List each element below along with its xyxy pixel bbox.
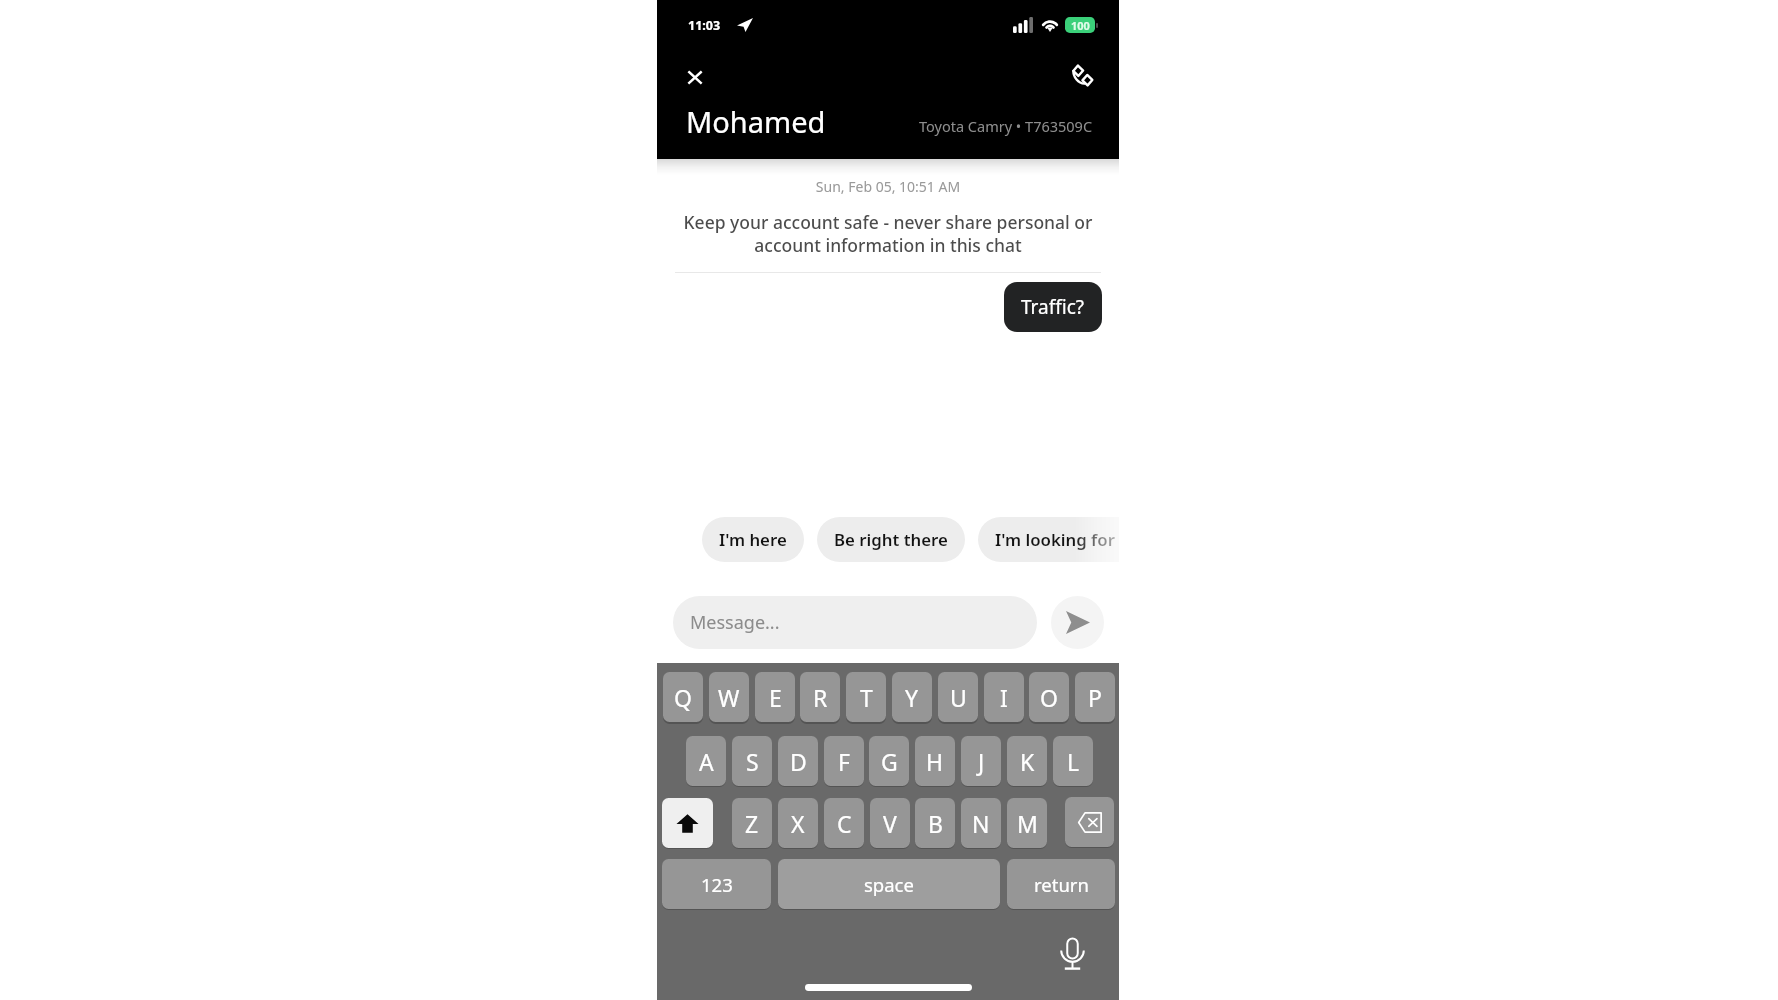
button[interactable]: V bbox=[870, 798, 910, 848]
button[interactable]: I bbox=[984, 672, 1024, 722]
button[interactable]: T bbox=[846, 672, 886, 722]
button[interactable]: Close bbox=[675, 57, 715, 97]
staticText: space bbox=[864, 872, 914, 897]
staticText: P bbox=[1088, 682, 1102, 713]
button[interactable]: Z bbox=[732, 798, 772, 848]
staticText: M bbox=[1017, 808, 1038, 839]
button[interactable]: space bbox=[778, 859, 1000, 909]
button[interactable]: K bbox=[1007, 736, 1047, 786]
staticText: U bbox=[950, 682, 967, 713]
button[interactable]: I'm looking for you bbox=[978, 517, 1119, 562]
staticText: I'm looking for you bbox=[995, 528, 1119, 551]
staticText: I bbox=[1000, 682, 1008, 713]
staticText: G bbox=[881, 746, 898, 777]
staticText: V bbox=[883, 808, 897, 839]
staticText: X bbox=[791, 808, 805, 839]
button[interactable]: Backspace bbox=[1065, 797, 1114, 847]
staticText: B bbox=[928, 808, 943, 839]
staticText: Mohamed bbox=[686, 102, 826, 141]
button[interactable]: G bbox=[869, 736, 909, 786]
staticText: Traffic? bbox=[1021, 294, 1085, 320]
button[interactable]: A bbox=[686, 736, 726, 786]
button[interactable]: I'm here bbox=[702, 517, 804, 562]
staticText: Keep your account safe - never share per… bbox=[679, 210, 1097, 257]
staticText: K bbox=[1020, 746, 1035, 777]
button[interactable]: 123 bbox=[662, 859, 771, 909]
button[interactable]: Send bbox=[1051, 596, 1104, 649]
staticText: T bbox=[860, 682, 873, 713]
staticText: F bbox=[838, 746, 850, 777]
button[interactable]: X bbox=[778, 798, 818, 848]
staticText: N bbox=[972, 808, 990, 839]
button[interactable]: Shift bbox=[662, 798, 713, 848]
button[interactable]: S bbox=[732, 736, 772, 786]
staticText: E bbox=[769, 682, 782, 713]
staticText: 123 bbox=[701, 872, 733, 897]
button[interactable]: Message... bbox=[673, 596, 1037, 649]
button[interactable]: L bbox=[1053, 736, 1093, 786]
button[interactable]: M bbox=[1007, 798, 1047, 848]
staticText: H bbox=[926, 746, 944, 777]
staticText: D bbox=[790, 746, 807, 777]
button[interactable]: Q bbox=[663, 672, 703, 722]
button[interactable]: J bbox=[961, 736, 1001, 786]
button[interactable]: H bbox=[915, 736, 955, 786]
staticText: A bbox=[699, 746, 714, 777]
staticText: Y bbox=[905, 682, 919, 713]
button[interactable]: return bbox=[1007, 859, 1115, 909]
staticText: J bbox=[978, 746, 985, 777]
staticText: S bbox=[746, 746, 759, 777]
button[interactable]: Y bbox=[892, 672, 932, 722]
button[interactable]: W bbox=[709, 672, 749, 722]
button[interactable]: R bbox=[800, 672, 840, 722]
button[interactable]: Dictate bbox=[1052, 934, 1093, 975]
staticText: Toyota Camry • T763509C bbox=[919, 116, 1093, 136]
staticText: Sun, Feb 05, 10:51 AM bbox=[657, 177, 1119, 196]
staticText: Be right there bbox=[834, 528, 948, 551]
staticText: Q bbox=[674, 682, 692, 713]
button[interactable]: D bbox=[778, 736, 818, 786]
button[interactable]: N bbox=[961, 798, 1001, 848]
button[interactable]: E bbox=[755, 672, 795, 722]
staticText: L bbox=[1067, 746, 1080, 777]
button[interactable]: C bbox=[824, 798, 864, 848]
staticText: R bbox=[813, 682, 828, 713]
button[interactable]: P bbox=[1075, 672, 1115, 722]
staticText: 100 bbox=[1071, 18, 1090, 33]
staticText: I'm here bbox=[719, 528, 787, 551]
staticText: Z bbox=[745, 808, 759, 839]
button[interactable]: B bbox=[915, 798, 955, 848]
staticText: W bbox=[718, 682, 740, 713]
button[interactable]: Be right there bbox=[817, 517, 965, 562]
button[interactable]: O bbox=[1029, 672, 1069, 722]
button[interactable]: Call bbox=[1062, 53, 1102, 93]
staticText: Message... bbox=[690, 610, 780, 635]
button[interactable]: U bbox=[938, 672, 978, 722]
staticText: 11:03 bbox=[688, 17, 721, 34]
staticText: C bbox=[837, 808, 852, 839]
button[interactable]: F bbox=[824, 736, 864, 786]
staticText: O bbox=[1040, 682, 1058, 713]
button[interactable]: Traffic? bbox=[1004, 282, 1102, 332]
staticText: return bbox=[1034, 872, 1089, 897]
